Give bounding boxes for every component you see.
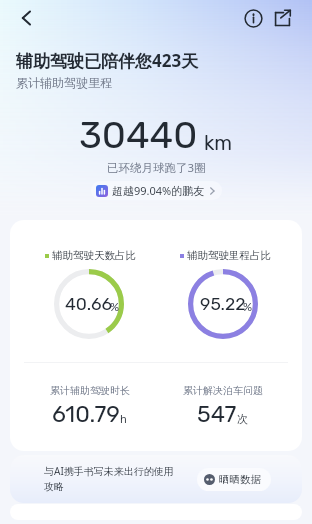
staticText: km (204, 131, 233, 155)
staticText: 超越99.04%的鹏友 (112, 183, 205, 198)
staticText: h (120, 411, 127, 426)
button[interactable]: 与AI携手书写未来出行的使用攻略 (10, 455, 302, 503)
staticText: 晒晒数据 (219, 473, 261, 486)
staticText: 辅助驾驶已陪伴您423天 (16, 49, 199, 72)
staticText: 辅助驾驶里程占比 (187, 249, 271, 262)
staticText: 累计辅助驾驶时长 (50, 384, 130, 397)
button[interactable]: 超越99.04%的鹏友 (91, 181, 222, 200)
button[interactable]: Share (272, 8, 293, 29)
staticText: 547 (197, 400, 237, 427)
staticText: 40.66 (65, 294, 113, 315)
staticText: 累计解决泊车问题 (183, 384, 263, 397)
staticText: % (110, 300, 120, 314)
staticText: % (243, 300, 253, 314)
staticText: 610.79 (52, 400, 120, 427)
staticText: 累计辅助驾驶里程 (16, 75, 112, 90)
staticText: 辅助驾驶天数占比 (52, 249, 136, 262)
staticText: 次 (237, 412, 248, 426)
button[interactable]: Back (13, 5, 39, 31)
staticText: 30440 (79, 112, 198, 157)
staticText: 已环绕月球跑了3圈 (107, 160, 206, 176)
staticText: 与AI携手书写未来出行的使用攻略 (44, 464, 180, 493)
button[interactable]: Info (243, 8, 264, 29)
button[interactable]: 晒晒数据 (197, 468, 271, 491)
staticText: 95.22 (200, 294, 246, 315)
